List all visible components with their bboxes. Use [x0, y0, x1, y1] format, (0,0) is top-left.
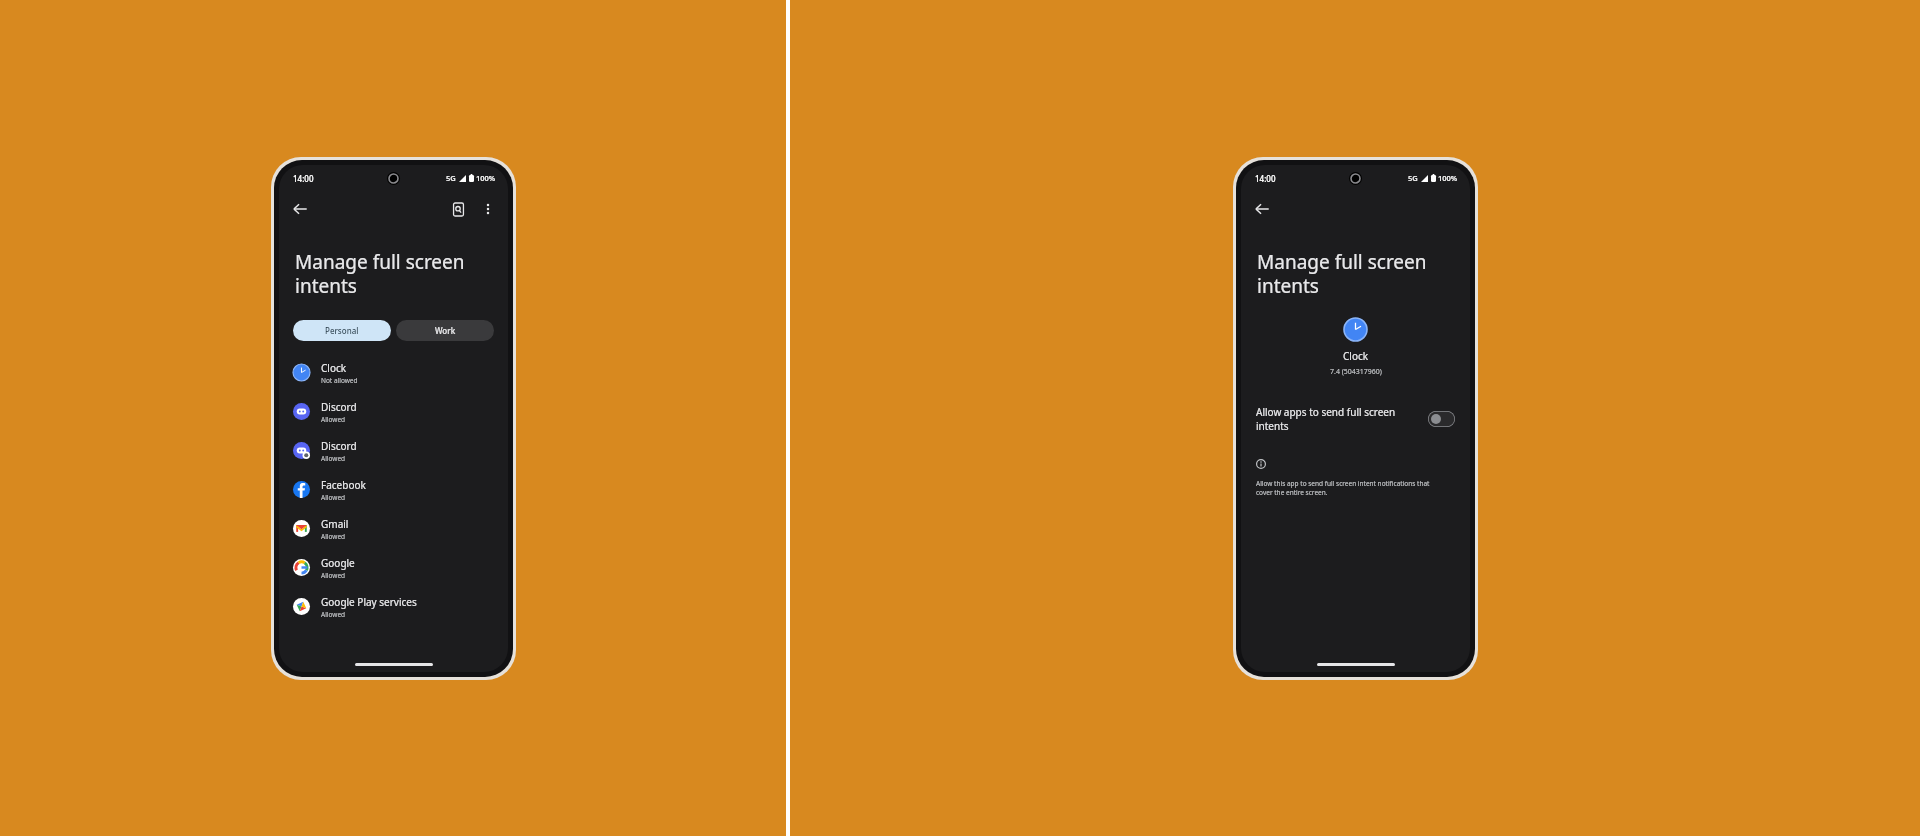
- staticText: Clock: [321, 361, 347, 375]
- staticText: 14:00: [1255, 173, 1276, 184]
- button[interactable]: Facebook: [279, 470, 508, 509]
- staticText: 14:00: [293, 173, 314, 184]
- button[interactable]: Google Play services: [279, 587, 508, 626]
- staticText: Personal: [325, 325, 359, 336]
- staticText: Facebook: [321, 478, 366, 492]
- staticText: 5G: [1408, 173, 1418, 183]
- button[interactable]: Google: [279, 548, 508, 587]
- staticText: Allowed: [321, 454, 346, 463]
- staticText: Google: [321, 556, 355, 570]
- button[interactable]: Work: [396, 320, 494, 341]
- staticText: Discord: [321, 400, 357, 414]
- staticText: Allow apps to send full screen intents: [1256, 405, 1418, 433]
- staticText: 100%: [476, 173, 496, 183]
- button[interactable]: Allow full screen intents toggle: [1428, 411, 1455, 427]
- staticText: Allowed: [321, 571, 346, 580]
- button[interactable]: Gmail: [279, 509, 508, 548]
- button[interactable]: Back: [284, 193, 316, 225]
- button[interactable]: Clock: [279, 353, 508, 392]
- button[interactable]: Search apps: [443, 194, 473, 224]
- staticText: Allowed: [321, 415, 346, 424]
- staticText: Allow this app to send full screen inten…: [1256, 479, 1430, 497]
- staticText: 7.4 (504317960): [1330, 367, 1382, 377]
- button[interactable]: Personal: [293, 320, 391, 341]
- staticText: Manage full screen intents: [1257, 249, 1427, 298]
- staticText: Work: [435, 325, 456, 336]
- button[interactable]: More options: [473, 194, 503, 224]
- button[interactable]: Discord: [279, 392, 508, 431]
- staticText: Clock: [1343, 349, 1369, 363]
- staticText: Google Play services: [321, 595, 417, 609]
- staticText: Allowed: [321, 610, 346, 619]
- button[interactable]: Allow apps to send full screen intents: [1241, 399, 1470, 439]
- button[interactable]: Discord: [279, 431, 508, 470]
- staticText: 100%: [1438, 173, 1458, 183]
- staticText: Discord: [321, 439, 357, 453]
- staticText: Manage full screen intents: [295, 249, 465, 298]
- staticText: 5G: [446, 173, 456, 183]
- staticText: Allowed: [321, 493, 346, 502]
- staticText: Allowed: [321, 532, 346, 541]
- staticText: Not allowed: [321, 376, 358, 385]
- button[interactable]: Back: [1246, 193, 1278, 225]
- staticText: Gmail: [321, 517, 349, 531]
